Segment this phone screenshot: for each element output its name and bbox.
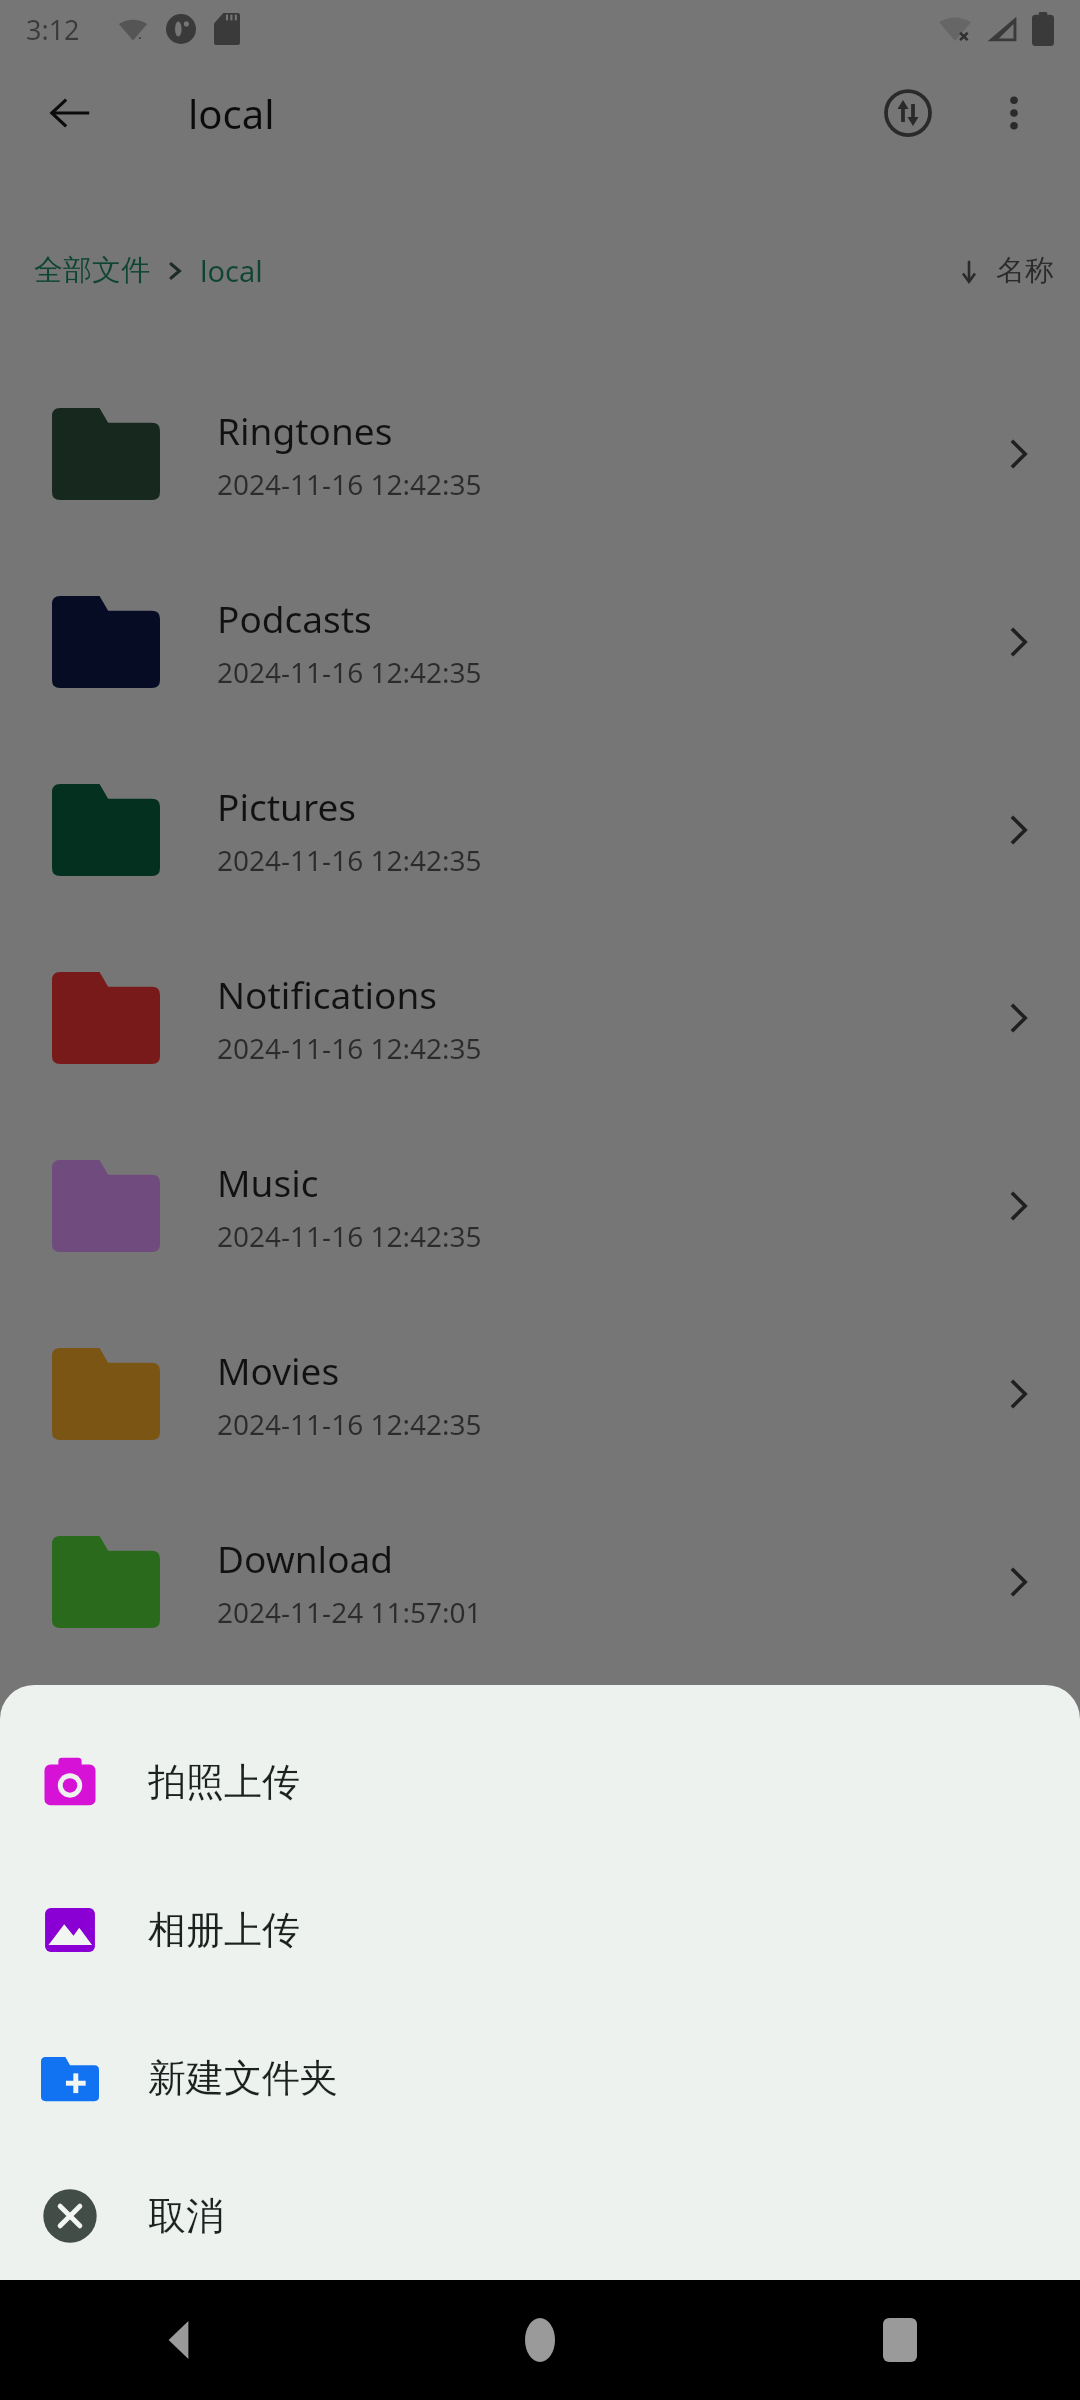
button[interactable]: Recent apps: [720, 2280, 1080, 2400]
staticText: Music: [217, 1157, 319, 1207]
staticText: Podcasts: [217, 593, 372, 643]
button[interactable]: Movies: [0, 1300, 1080, 1488]
staticText: 拍照上传: [148, 1758, 300, 1806]
button[interactable]: 名称: [954, 252, 1054, 289]
staticText: local: [200, 251, 263, 290]
staticText: Notifications: [217, 969, 438, 1019]
button[interactable]: 取消: [0, 2152, 1080, 2280]
button[interactable]: Home: [360, 2280, 720, 2400]
staticText: Ringtones: [217, 405, 393, 455]
staticText: local: [188, 86, 275, 140]
button[interactable]: Back: [28, 71, 112, 155]
button[interactable]: Pictures: [0, 736, 1080, 924]
staticText: 2024-11-24 11:57:01: [217, 1593, 482, 1631]
staticText: 取消: [148, 2192, 224, 2240]
button[interactable]: More options: [972, 71, 1056, 155]
staticText: 3:12: [26, 11, 80, 48]
staticText: 2024-11-16 12:42:35: [217, 1405, 482, 1443]
staticText: 2024-11-16 12:42:35: [217, 465, 482, 503]
button[interactable]: Download: [0, 1488, 1080, 1676]
staticText: 名称: [996, 252, 1054, 289]
staticText: 2024-11-16 12:42:35: [217, 841, 482, 879]
button[interactable]: 新建文件夹: [0, 2004, 1080, 2152]
staticText: 2024-11-16 12:42:35: [217, 1029, 482, 1067]
button[interactable]: Ringtones: [0, 360, 1080, 548]
staticText: 2024-11-16 12:42:35: [217, 653, 482, 691]
button[interactable]: Notifications: [0, 924, 1080, 1112]
staticText: Pictures: [217, 781, 357, 831]
staticText: Movies: [217, 1345, 340, 1395]
staticText: Download: [217, 1533, 394, 1583]
staticText: 全部文件: [34, 252, 150, 289]
button[interactable]: Podcasts: [0, 548, 1080, 736]
button[interactable]: 拍照上传: [0, 1708, 1080, 1856]
staticText: 新建文件夹: [148, 2054, 338, 2102]
staticText: 相册上传: [148, 1906, 300, 1954]
button[interactable]: Music: [0, 1112, 1080, 1300]
staticText: 2024-11-16 12:42:35: [217, 1217, 482, 1255]
button[interactable]: 全部文件: [34, 251, 263, 290]
button[interactable]: 相册上传: [0, 1856, 1080, 2004]
button[interactable]: Back: [0, 2280, 360, 2400]
button[interactable]: Sync: [866, 71, 950, 155]
